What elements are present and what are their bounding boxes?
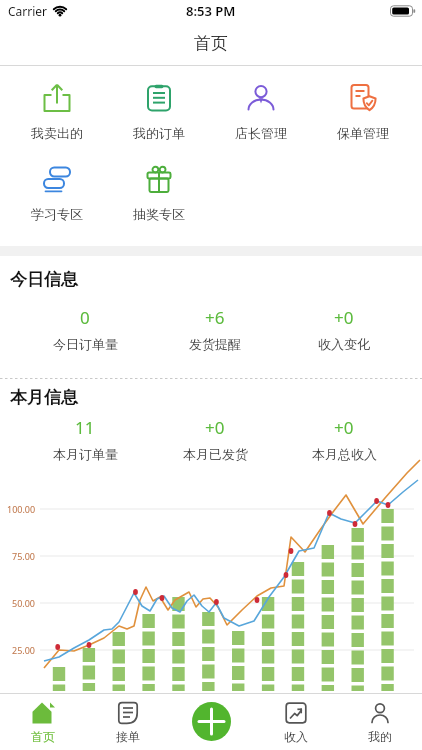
button[interactable]: 首页 bbox=[31, 694, 55, 750]
button[interactable]: 我卖出的 bbox=[31, 84, 83, 141]
staticText: 50.00 bbox=[12, 597, 36, 609]
staticText: 今日信息 bbox=[10, 269, 78, 290]
staticText: 8:53 PM bbox=[186, 2, 236, 20]
staticText: +0 bbox=[205, 416, 225, 436]
staticText: 0 bbox=[80, 306, 90, 326]
staticText: +6 bbox=[205, 306, 225, 326]
button[interactable]: 收入 bbox=[284, 694, 308, 750]
button[interactable]: 店长管理 bbox=[235, 84, 287, 141]
staticText: 25.00 bbox=[12, 644, 36, 656]
staticText: Carrier bbox=[8, 3, 48, 19]
staticText: 本月总收入 bbox=[312, 446, 377, 462]
staticText: 本月订单量 bbox=[53, 446, 118, 462]
staticText: 收入变化 bbox=[318, 336, 370, 352]
staticText: 我的 bbox=[368, 729, 392, 744]
button[interactable]: 学习专区 bbox=[31, 165, 83, 221]
staticText: 本月信息 bbox=[10, 387, 78, 408]
staticText: 接单 bbox=[116, 729, 140, 744]
staticText: +0 bbox=[334, 306, 354, 326]
staticText: 本月已发货 bbox=[183, 446, 248, 462]
button[interactable]: 我的 bbox=[368, 694, 392, 750]
staticText: 100.00 bbox=[7, 503, 36, 515]
staticText: 今日订单量 bbox=[53, 336, 118, 352]
staticText: 11 bbox=[75, 416, 95, 436]
staticText: 首页 bbox=[194, 33, 228, 54]
button[interactable]: 接单 bbox=[116, 694, 140, 750]
staticText: 发货提醒 bbox=[189, 336, 241, 352]
staticText: +0 bbox=[334, 416, 354, 436]
staticText: 我的订单 bbox=[133, 125, 185, 141]
staticText: 首页 bbox=[31, 729, 55, 744]
staticText: 抽奖专区 bbox=[133, 206, 185, 221]
staticText: 店长管理 bbox=[235, 125, 287, 141]
staticText: 我卖出的 bbox=[31, 125, 83, 141]
button[interactable]: 抽奖专区 bbox=[133, 165, 185, 221]
button[interactable]: 保单管理 bbox=[337, 84, 389, 141]
staticText: 学习专区 bbox=[31, 206, 83, 221]
staticText: 75.00 bbox=[12, 550, 36, 562]
button[interactable]: 我的订单 bbox=[133, 84, 185, 141]
staticText: 保单管理 bbox=[337, 125, 389, 141]
button[interactable] bbox=[192, 702, 231, 741]
staticText: 收入 bbox=[284, 729, 308, 744]
